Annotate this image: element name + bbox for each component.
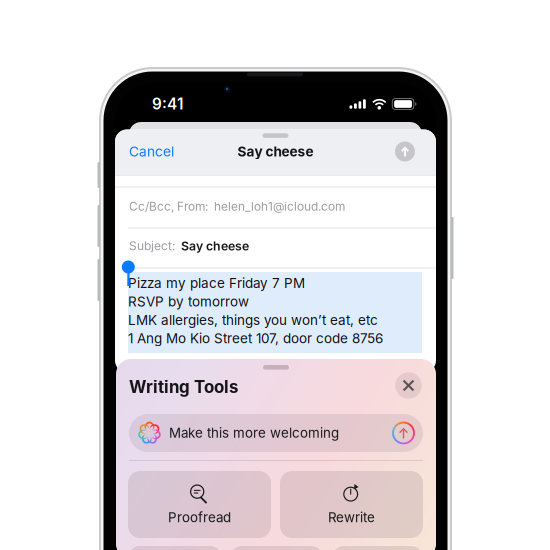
button[interactable]: More writing tools	[128, 546, 222, 550]
staticText: Say cheese	[181, 239, 249, 253]
staticText: Rewrite	[328, 509, 375, 525]
staticText: Pizza my place Friday 7 PM	[128, 275, 305, 291]
staticText: Say cheese	[237, 143, 313, 160]
button[interactable]: Close	[395, 372, 422, 399]
button[interactable]: Send	[395, 141, 415, 161]
staticText: LMK allergies, things you won’t eat, etc	[128, 312, 378, 328]
staticText: RSVP by tomorrow	[128, 293, 249, 310]
button[interactable]: Cancel	[123, 138, 185, 165]
button[interactable]: Make this more welcoming	[129, 414, 423, 452]
button[interactable]: Proofread	[128, 471, 271, 538]
staticText: Make this more welcoming	[169, 425, 339, 441]
staticText: Cc/Bcc, From:	[129, 199, 214, 214]
staticText: helen_loh1@icloud.com	[214, 199, 345, 214]
button[interactable]: More writing tools	[230, 546, 323, 550]
button[interactable]: More writing tools	[332, 546, 423, 550]
staticText: 1 Ang Mo Kio Street 107, door code 8756	[128, 330, 383, 347]
staticText: 9:41	[152, 95, 183, 113]
button[interactable]: Rewrite	[280, 471, 423, 538]
staticText: Proofread	[168, 509, 231, 525]
staticText: Writing Tools	[129, 377, 238, 397]
staticText: Cancel	[129, 143, 174, 160]
staticText: Subject:	[129, 239, 181, 253]
